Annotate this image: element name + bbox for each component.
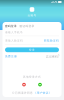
button[interactable]: 登录 (5, 47, 59, 52)
button[interactable]: 获取验证码 (44, 39, 59, 42)
staticText: 获取验证码 (44, 39, 59, 42)
button[interactable]: Sign in with Weibo (22, 83, 26, 87)
button[interactable]: Agree to terms (12, 92, 14, 94)
staticText: 登录 (29, 48, 35, 51)
button[interactable]: 验证码登录 (19, 24, 34, 28)
staticText: 云账号 (27, 14, 36, 17)
button[interactable]: 忘记密码? (46, 55, 59, 58)
staticText: 《用户协议》 (34, 91, 52, 94)
staticText: 忘记密码? (46, 55, 59, 58)
staticText: 已阅读并同意 (15, 91, 33, 94)
staticText: 其他登录方式 (23, 75, 41, 78)
button[interactable]: Sign in with WeChat (38, 83, 42, 87)
staticText: 密码登录 (5, 24, 17, 28)
button[interactable]: 《用户协议》 (34, 91, 52, 94)
button[interactable]: 密码登录 (5, 24, 17, 28)
button[interactable]: 免费注册 (5, 55, 17, 58)
staticText: 验证码登录 (19, 24, 34, 28)
staticText: 请输入手机号 (5, 31, 23, 34)
staticText: 请输入验证码 (5, 39, 23, 42)
staticText: 免费注册 (5, 55, 17, 58)
